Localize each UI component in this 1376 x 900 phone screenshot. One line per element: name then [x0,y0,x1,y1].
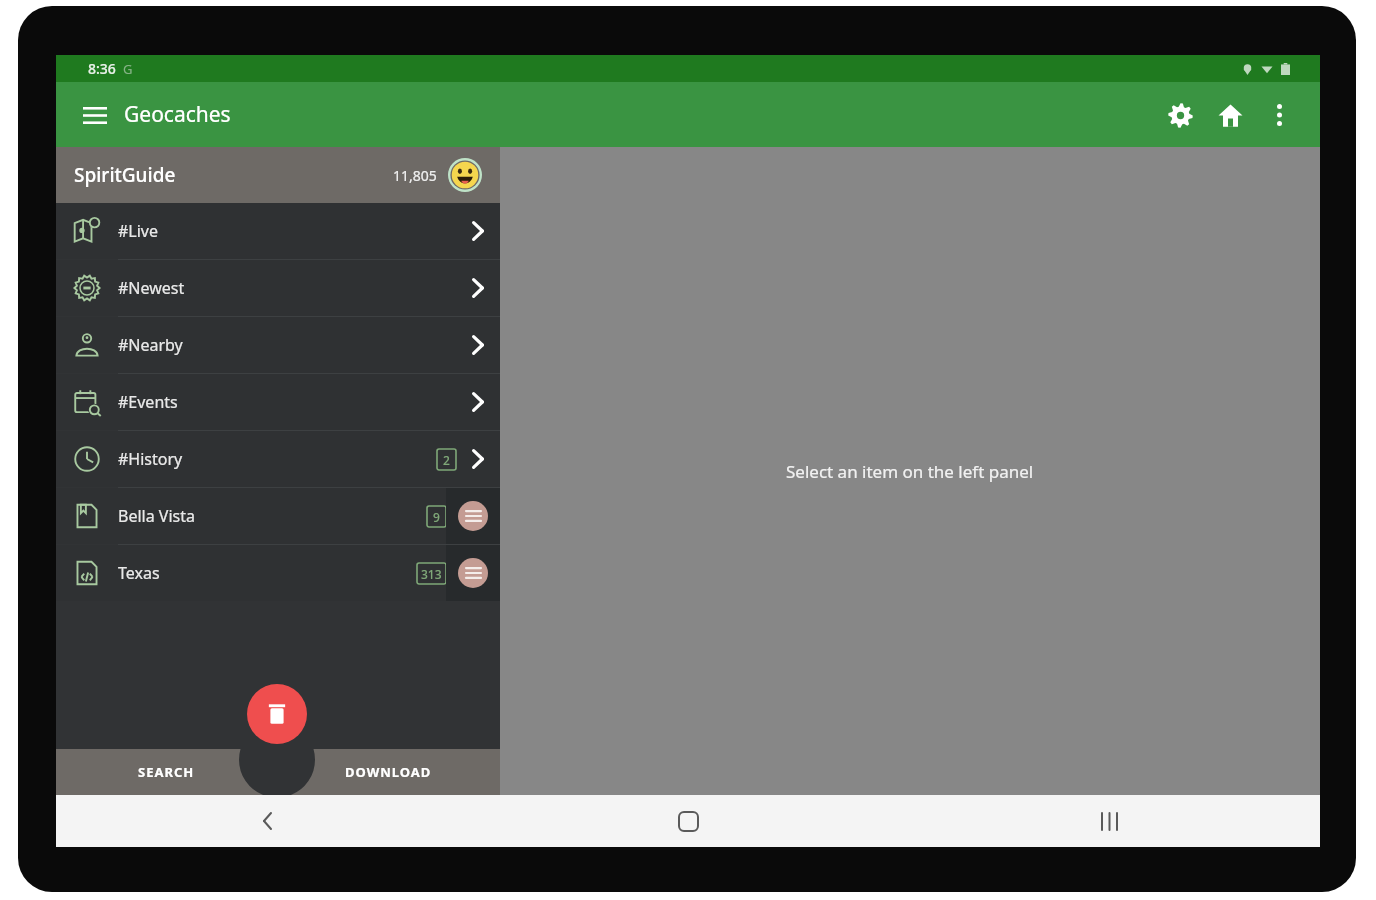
button[interactable]: Options for Bella Vista [446,488,500,544]
button[interactable]: Expand #Newest [456,260,500,316]
staticText: Texas [118,562,160,584]
button[interactable]: Settings [1156,91,1204,139]
staticText: 9 [433,509,440,525]
button[interactable]: SpiritGuide [56,147,500,203]
button[interactable]: #History [56,431,500,487]
staticText: Geocaches [124,100,231,129]
staticText: #History [118,448,183,470]
button[interactable]: Open navigation menu [70,90,120,140]
staticText: DOWNLOAD [345,763,432,781]
staticText: 2 [443,452,450,468]
staticText: #Live [118,220,159,242]
button[interactable]: Back [56,795,478,847]
staticText: SpiritGuide [74,162,176,188]
staticText: Bella Vista [118,505,195,527]
staticText: #Events [118,391,178,413]
button[interactable]: Recent apps [899,795,1320,847]
staticText: Select an item on the left panel [786,460,1034,483]
staticText: 313 [421,566,442,582]
button[interactable]: #Events [56,374,500,430]
staticText: #Nearby [118,334,183,356]
button[interactable]: #Newest [56,260,500,316]
button[interactable]: Home [1206,91,1254,139]
staticText: 11,805 [393,166,437,185]
button[interactable]: SEARCH [56,749,277,795]
button[interactable]: More options [1256,92,1302,138]
button[interactable]: Home [478,795,899,847]
button[interactable]: Expand #Nearby [456,317,500,373]
button[interactable]: Bella Vista [56,488,500,544]
staticText: G [123,60,133,78]
button[interactable]: #Nearby [56,317,500,373]
button[interactable]: Delete [247,684,307,744]
staticText: #Newest [118,277,185,299]
button[interactable]: Expand #Live [456,203,500,259]
button[interactable]: Texas [56,545,500,601]
staticText: SEARCH [138,763,195,781]
button[interactable]: Expand #Events [456,374,500,430]
button[interactable]: Options for Texas [446,545,500,601]
button[interactable]: #Live [56,203,500,259]
staticText: 8:36 [88,59,116,78]
button[interactable]: Expand #History [456,431,500,487]
button[interactable]: DOWNLOAD [277,749,500,795]
